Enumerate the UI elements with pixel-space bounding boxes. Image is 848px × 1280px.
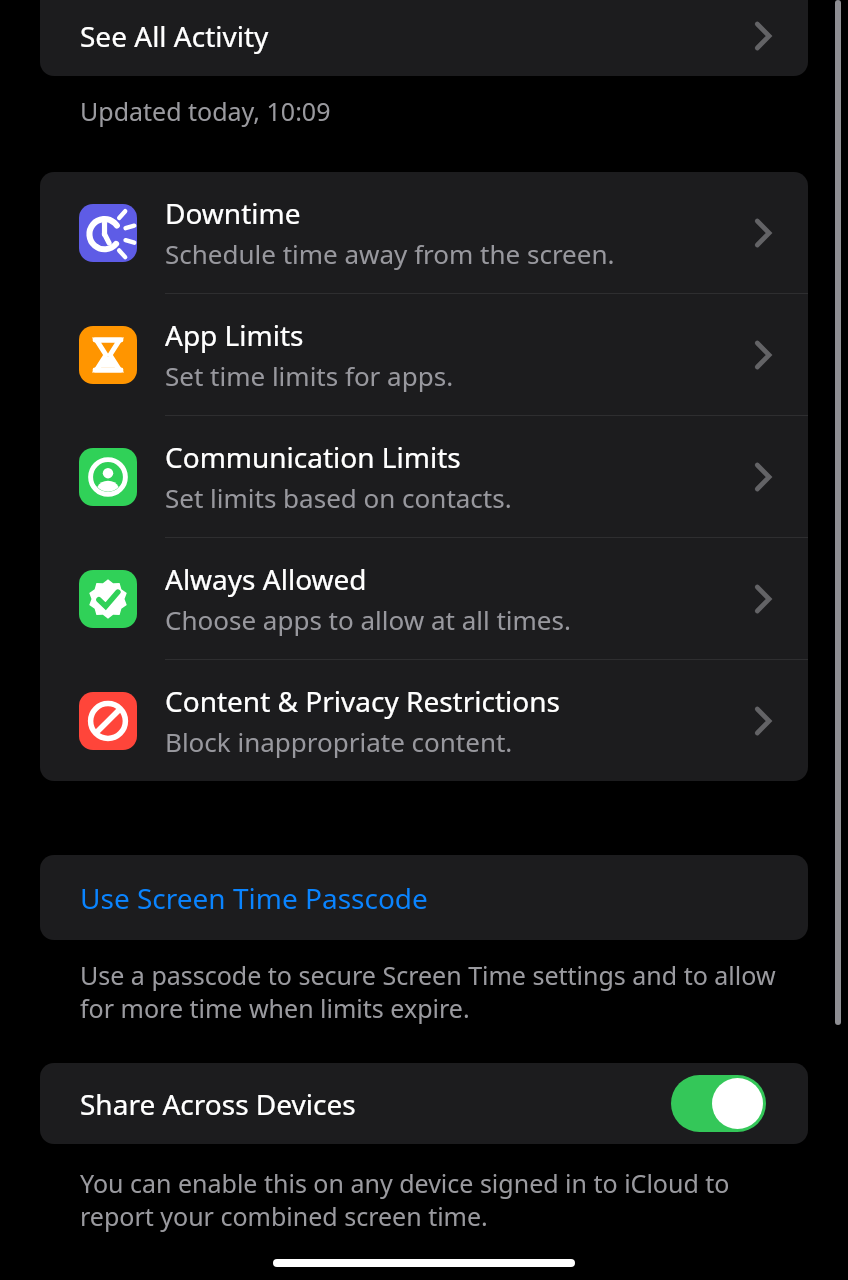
staticText: Share Across Devices — [80, 1085, 356, 1123]
button[interactable]: See All Activity — [40, 0, 808, 76]
other: Open — [754, 706, 772, 736]
button[interactable]: Use Screen Time Passcode — [40, 855, 808, 940]
button[interactable]: Share Across Devices toggle — [671, 1075, 766, 1132]
other: Open — [754, 21, 772, 51]
button[interactable]: Content & Privacy Restrictions — [40, 660, 808, 781]
other: Open — [754, 340, 772, 370]
staticText: Communication Limits — [165, 438, 461, 476]
staticText: Updated today, 10:09 — [80, 94, 331, 128]
button[interactable]: App Limits — [40, 294, 808, 415]
staticText: App Limits — [165, 316, 304, 354]
staticText: Schedule time away from the screen. — [165, 236, 615, 271]
staticText: Always Allowed — [165, 560, 367, 598]
other: Open — [754, 218, 772, 248]
staticText: Set time limits for apps. — [165, 358, 454, 393]
button[interactable]: Always Allowed — [40, 538, 808, 659]
staticText: See All Activity — [80, 17, 269, 55]
other: Open — [754, 462, 772, 492]
staticText: Set limits based on contacts. — [165, 480, 512, 515]
staticText: Content & Privacy Restrictions — [165, 682, 560, 720]
staticText: Use a passcode to secure Screen Time set… — [80, 958, 778, 1025]
other: Open — [754, 584, 772, 614]
staticText: Choose apps to allow at all times. — [165, 602, 571, 637]
staticText: Downtime — [165, 194, 301, 232]
button[interactable]: Downtime — [40, 172, 808, 293]
staticText: Use Screen Time Passcode — [80, 879, 428, 917]
button[interactable]: Communication Limits — [40, 416, 808, 537]
staticText: You can enable this on any device signed… — [80, 1166, 778, 1233]
staticText: Block inappropriate content. — [165, 724, 513, 759]
